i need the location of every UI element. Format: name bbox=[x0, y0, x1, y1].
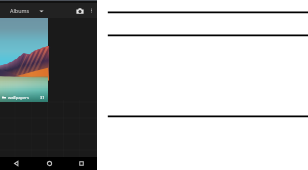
staticText: Albums bbox=[10, 7, 30, 14]
button[interactable]: Home bbox=[33, 157, 65, 170]
staticText: wallpapers bbox=[8, 95, 29, 101]
staticText: 31 bbox=[40, 95, 45, 101]
button[interactable]: wallpapers bbox=[0, 18, 48, 102]
button[interactable]: More options bbox=[86, 5, 97, 16]
button[interactable]: Back bbox=[0, 157, 33, 170]
button[interactable]: Recents bbox=[65, 157, 97, 170]
button[interactable]: Camera bbox=[73, 4, 86, 17]
button[interactable]: Albums bbox=[0, 7, 51, 14]
